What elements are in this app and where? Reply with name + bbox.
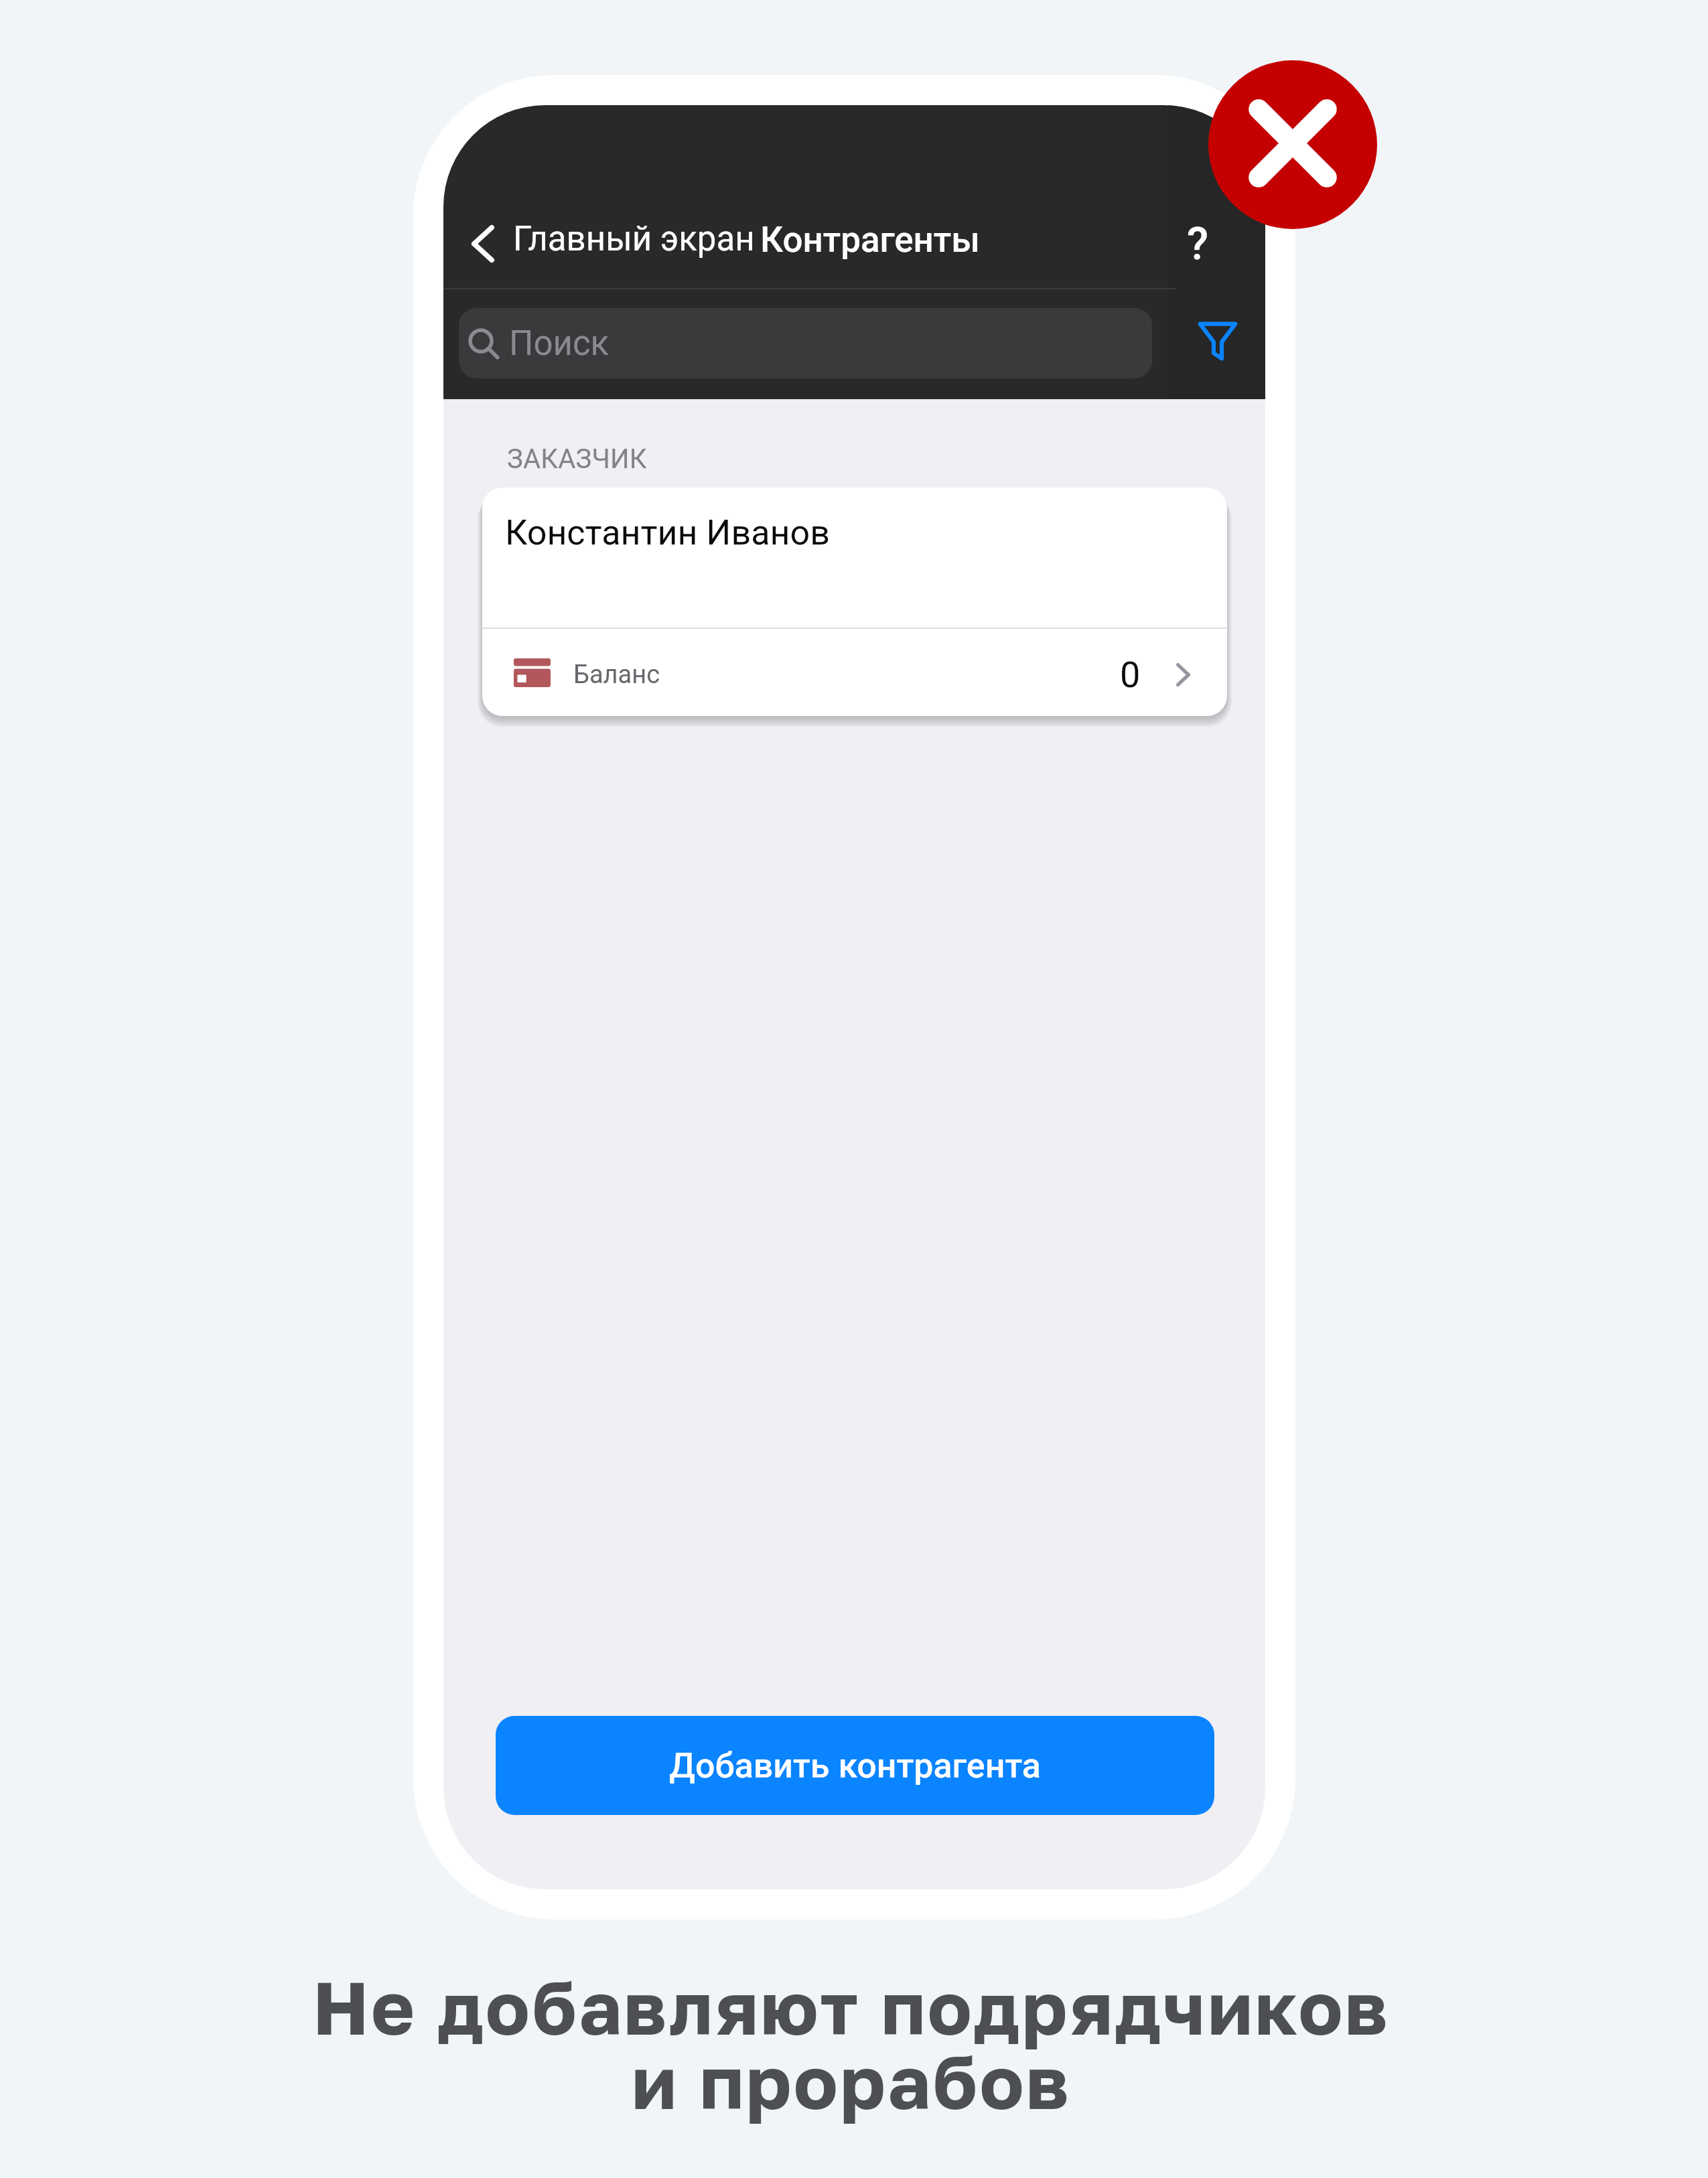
button[interactable]: Help <box>1151 197 1244 291</box>
staticText: 0 <box>1120 654 1141 696</box>
button[interactable]: Константин Иванов <box>482 488 1227 628</box>
button[interactable]: Главный экран <box>513 219 755 259</box>
staticText: Не добавляют подрядчиков и прорабов <box>0 1962 1705 2126</box>
button[interactable]: Баланс <box>482 629 1227 716</box>
button[interactable]: Filter <box>1178 301 1258 381</box>
staticText: Поиск <box>509 323 610 364</box>
staticText: Баланс <box>573 660 660 690</box>
button[interactable]: Back <box>449 203 516 285</box>
staticText: Константин Иванов <box>505 512 830 553</box>
button[interactable]: Добавить контрагента <box>496 1716 1214 1815</box>
staticText: ЗАКАЗЧИК <box>507 443 647 475</box>
staticText: Контрагенты <box>760 219 980 261</box>
staticText: Добавить контрагента <box>669 1745 1041 1786</box>
staticText: ? <box>1187 218 1209 270</box>
button[interactable]: Поиск <box>459 308 1152 378</box>
button[interactable]: Error <box>1208 60 1377 229</box>
